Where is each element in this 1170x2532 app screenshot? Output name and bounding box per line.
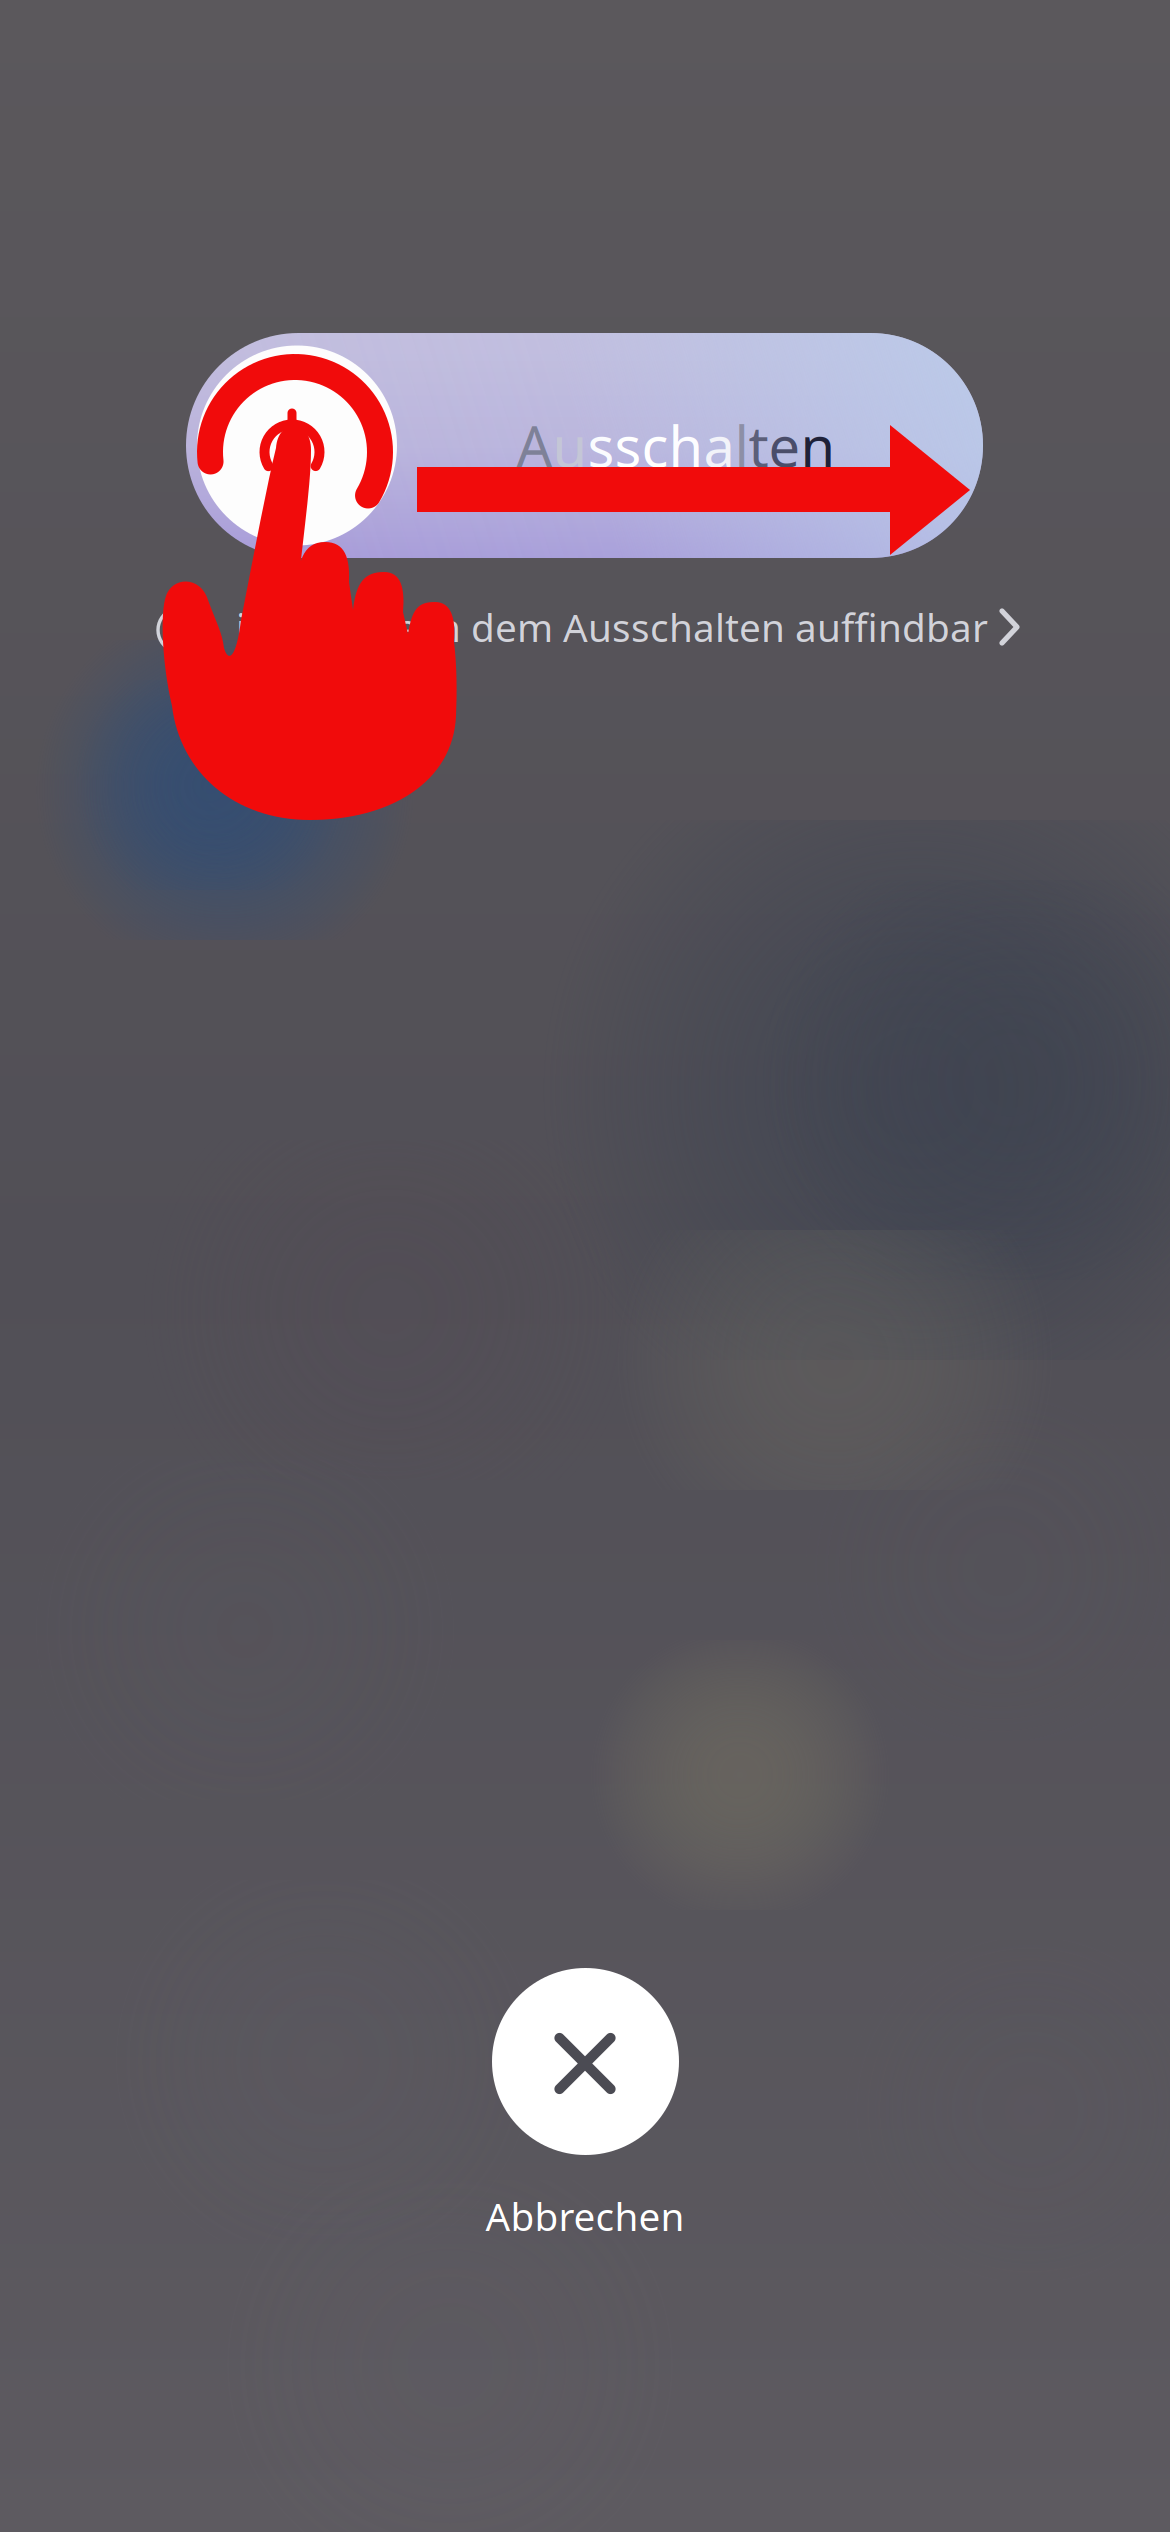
button[interactable]: A <box>186 333 983 558</box>
staticText: n <box>800 408 835 483</box>
staticText: s <box>614 408 641 483</box>
button[interactable]: iPhone nach dem Ausschalten auffindbar <box>155 598 1035 656</box>
button[interactable]: Abbrechen <box>375 1968 795 2258</box>
staticText: u <box>552 408 587 483</box>
staticText: h <box>668 408 703 483</box>
staticText: t <box>748 408 768 483</box>
staticText: Abbrechen <box>485 2190 684 2242</box>
staticText: iPhone nach dem Ausschalten auffindbar <box>236 601 988 653</box>
staticText: A <box>516 408 552 483</box>
staticText: e <box>768 408 800 483</box>
staticText: s <box>587 408 614 483</box>
staticText: l <box>734 408 748 483</box>
staticText: a <box>703 408 734 483</box>
staticText: c <box>641 408 668 483</box>
